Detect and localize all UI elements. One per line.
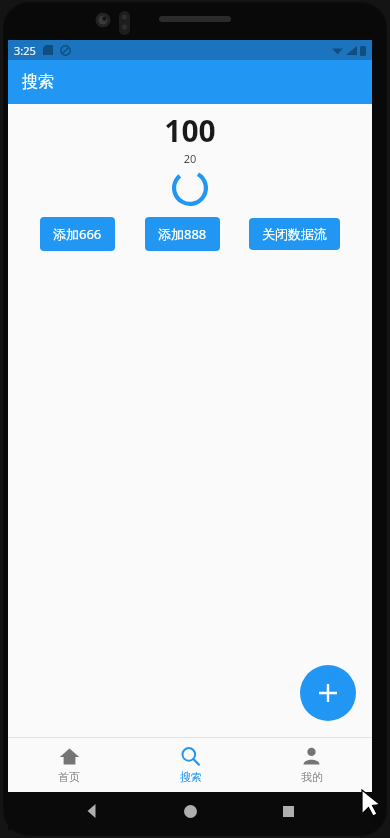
button[interactable]: 添加666 — [40, 217, 115, 251]
staticText: 搜索 — [22, 72, 54, 92]
staticText: 关闭数据流 — [262, 226, 327, 242]
staticText: 20 — [8, 151, 372, 166]
button[interactable]: Home — [176, 797, 204, 825]
staticText: 100 — [8, 110, 372, 151]
staticText: 搜索 — [180, 770, 202, 784]
button[interactable]: 搜索 — [130, 740, 251, 790]
button[interactable]: Back — [78, 797, 106, 825]
staticText: 我的 — [301, 770, 323, 784]
button[interactable]: 关闭数据流 — [249, 218, 340, 250]
button[interactable]: Add — [300, 665, 356, 721]
staticText: 添加666 — [53, 225, 102, 243]
button[interactable]: 我的 — [251, 740, 372, 790]
staticText: 添加888 — [158, 225, 207, 243]
staticText: 首页 — [58, 770, 80, 784]
staticText: 3:25 — [14, 43, 36, 58]
button[interactable]: 首页 — [8, 740, 130, 790]
button[interactable]: Recents — [274, 797, 302, 825]
button[interactable]: 添加888 — [145, 217, 220, 251]
